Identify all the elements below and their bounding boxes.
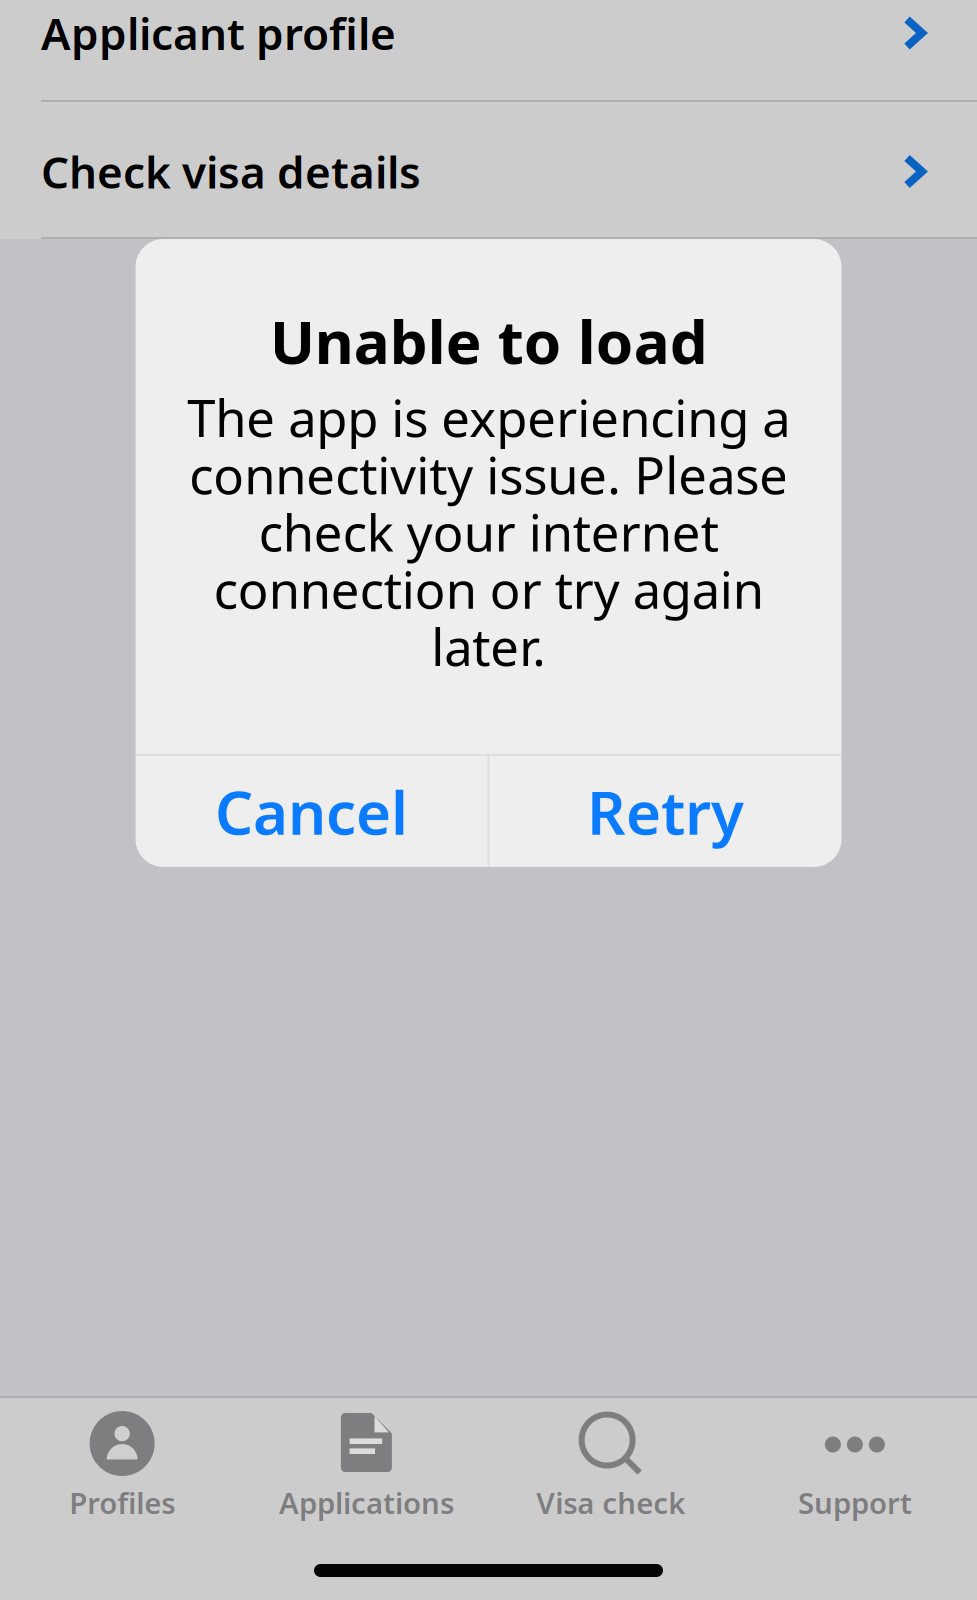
button[interactable]: Check visa details [0, 102, 977, 237]
staticText: The app is experiencing a connectivity i… [187, 384, 790, 680]
staticText: Retry [587, 772, 744, 851]
button[interactable]: Visa check [488, 1397, 733, 1537]
button[interactable]: Applicant profile [0, 0, 977, 100]
staticText: Applicant profile [41, 4, 396, 62]
staticText: Cancel [215, 772, 408, 851]
button[interactable]: Support [733, 1397, 977, 1537]
staticText: Support [798, 1483, 912, 1522]
button[interactable]: Cancel [135, 756, 487, 867]
button[interactable]: Profiles [0, 1397, 244, 1537]
staticText: Profiles [69, 1483, 175, 1522]
button[interactable]: Retry [489, 756, 841, 867]
button[interactable]: Applications [244, 1397, 488, 1537]
staticText: Visa check [536, 1483, 685, 1522]
staticText: Check visa details [41, 142, 421, 201]
staticText: Applications [279, 1483, 454, 1522]
staticText: Unable to load [269, 301, 707, 381]
